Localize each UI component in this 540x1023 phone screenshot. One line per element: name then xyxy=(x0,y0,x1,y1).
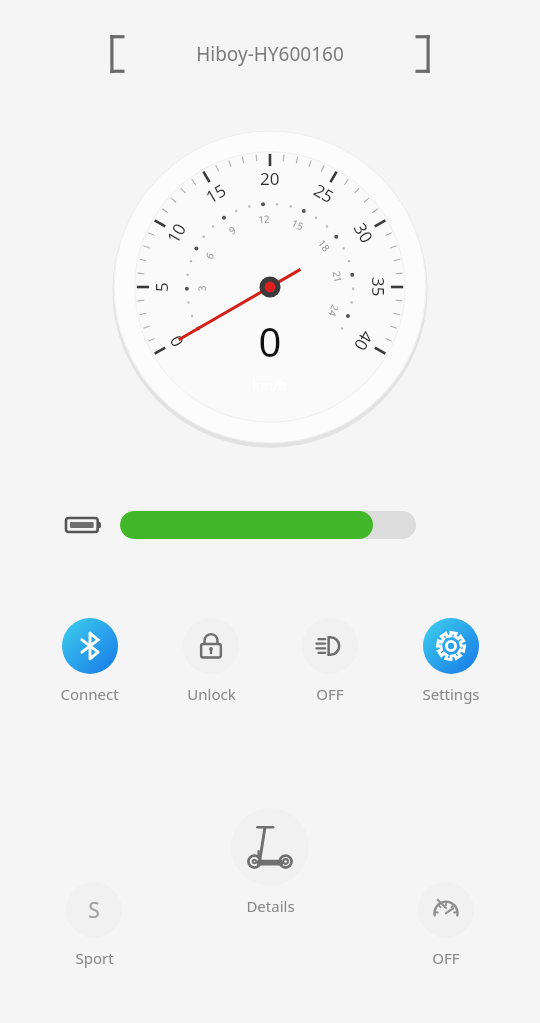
other: Speed mode xyxy=(430,894,462,926)
button[interactable]: Speed mode xyxy=(418,882,474,968)
staticText: Hiboy-HY600160 xyxy=(196,41,344,67)
staticText: Connect xyxy=(60,684,119,704)
other: Unlock xyxy=(183,618,239,674)
button[interactable]: S xyxy=(66,882,122,968)
button[interactable]: Settings xyxy=(418,618,484,704)
staticText: S xyxy=(88,896,100,925)
staticText: OFF xyxy=(432,948,460,968)
other: Headlight xyxy=(302,618,358,674)
staticText: OFF xyxy=(316,684,344,704)
staticText: Unlock xyxy=(187,684,236,704)
staticText: Settings xyxy=(422,684,480,704)
button[interactable]: Headlight xyxy=(298,618,362,704)
other: Connect xyxy=(62,618,118,674)
button[interactable]: Unlock xyxy=(179,618,243,704)
staticText: Details xyxy=(246,896,295,916)
button[interactable]: Connect xyxy=(56,618,123,704)
staticText: Sport xyxy=(75,948,114,968)
button[interactable]: Details xyxy=(231,808,309,916)
other: Settings xyxy=(423,618,479,674)
